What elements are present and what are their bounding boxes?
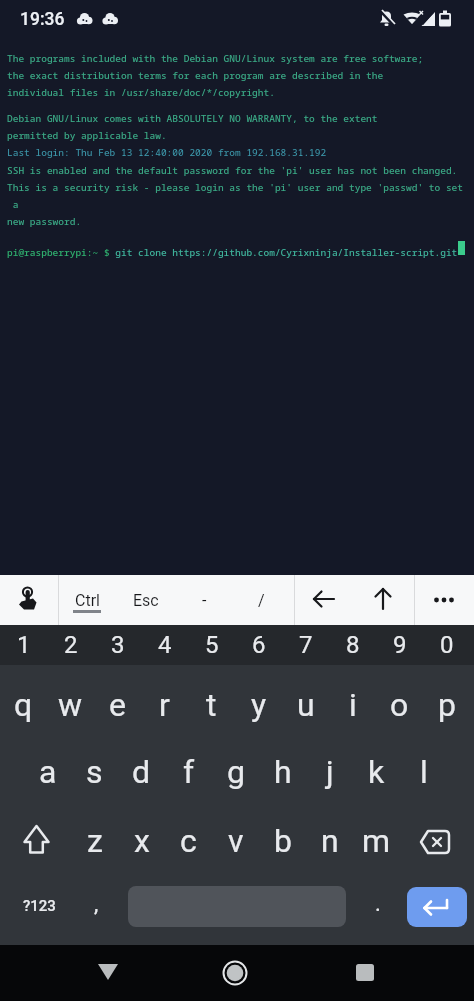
button[interactable]: [14, 582, 44, 618]
staticText: ,: [94, 891, 99, 917]
staticText: 3: [111, 631, 125, 659]
staticText: The programs included with the Debian GN…: [7, 52, 424, 65]
button[interactable]: 2: [47, 625, 94, 665]
button[interactable]: [428, 588, 460, 612]
staticText: r: [159, 686, 170, 724]
button[interactable]: o: [376, 673, 423, 737]
staticText: 0: [440, 631, 454, 659]
button[interactable]: [88, 952, 128, 992]
button[interactable]: i: [329, 673, 376, 737]
button[interactable]: p: [423, 673, 470, 737]
staticText: 9: [393, 631, 407, 659]
button[interactable]: f: [165, 740, 212, 804]
button[interactable]: Esc: [118, 575, 174, 625]
button[interactable]: a: [24, 740, 71, 804]
button[interactable]: g: [212, 740, 259, 804]
staticText: w: [58, 686, 83, 724]
staticText: e: [109, 686, 126, 724]
staticText: i: [349, 686, 357, 724]
staticText: 19:36: [20, 9, 65, 30]
button[interactable]: r: [141, 673, 188, 737]
staticText: 1: [17, 631, 31, 659]
staticText: 2: [64, 631, 78, 659]
button[interactable]: c: [165, 809, 212, 873]
staticText: s: [86, 753, 103, 791]
staticText: p: [438, 686, 456, 724]
button[interactable]: e: [94, 673, 141, 737]
staticText: individual files in /usr/share/doc/*/cop…: [7, 86, 275, 99]
staticText: /: [258, 591, 265, 610]
button[interactable]: [412, 820, 456, 860]
button[interactable]: [407, 887, 467, 927]
button[interactable]: 3: [94, 625, 141, 665]
button[interactable]: v: [212, 809, 259, 873]
staticText: Esc: [133, 591, 159, 610]
button[interactable]: m: [353, 809, 400, 873]
button[interactable]: w: [47, 673, 94, 737]
staticText: f: [183, 753, 195, 791]
staticText: This is a security risk - please login a…: [7, 181, 464, 194]
staticText: k: [368, 753, 385, 791]
staticText: 7: [299, 631, 313, 659]
button[interactable]: 7: [282, 625, 329, 665]
button[interactable]: [16, 815, 58, 859]
staticText: z: [87, 822, 103, 860]
staticText: 6: [252, 631, 266, 659]
button[interactable]: d: [118, 740, 165, 804]
button[interactable]: 1: [0, 625, 47, 665]
button[interactable]: z: [71, 809, 118, 873]
button[interactable]: y: [235, 673, 282, 737]
staticText: the exact distribution terms for each pr…: [7, 69, 384, 82]
button[interactable]: l: [400, 740, 447, 804]
staticText: h: [274, 753, 292, 791]
button[interactable]: ?123: [10, 880, 68, 932]
staticText: d: [132, 753, 151, 791]
button[interactable]: /: [233, 575, 289, 625]
staticText: new password.: [7, 215, 82, 228]
button[interactable]: j: [306, 740, 353, 804]
button[interactable]: u: [282, 673, 329, 737]
button[interactable]: ,: [78, 880, 114, 928]
staticText: b: [274, 822, 292, 860]
button[interactable]: [345, 952, 385, 992]
staticText: a: [39, 753, 57, 791]
staticText: n: [321, 822, 339, 860]
staticText: j: [326, 753, 334, 791]
staticText: y: [251, 686, 267, 724]
button[interactable]: q: [0, 673, 47, 737]
staticText: Last login: Thu Feb 13 12:40:00 2020 fro…: [7, 146, 327, 159]
button[interactable]: n: [306, 809, 353, 873]
button[interactable]: 4: [141, 625, 188, 665]
staticText: m: [362, 822, 391, 860]
button[interactable]: 8: [329, 625, 376, 665]
button[interactable]: 0: [423, 625, 470, 665]
button[interactable]: [310, 585, 338, 613]
button[interactable]: [369, 585, 397, 613]
staticText: pi@raspberrypi:~ $ git clone https://git…: [7, 246, 458, 259]
staticText: u: [297, 686, 315, 724]
button[interactable]: k: [353, 740, 400, 804]
button[interactable]: 5: [188, 625, 235, 665]
button[interactable]: s: [71, 740, 118, 804]
button[interactable]: b: [259, 809, 306, 873]
staticText: Debian GNU/Linux comes with ABSOLUTELY N…: [7, 112, 378, 125]
button[interactable]: 6: [235, 625, 282, 665]
button[interactable]: .: [360, 880, 396, 928]
button[interactable]: [215, 953, 255, 993]
button[interactable]: -: [176, 575, 232, 625]
staticText: SSH is enabled and the default password …: [7, 164, 458, 177]
button[interactable]: t: [188, 673, 235, 737]
button[interactable]: 9: [376, 625, 423, 665]
staticText: 8: [346, 631, 360, 659]
staticText: c: [180, 822, 197, 860]
staticText: l: [420, 753, 428, 791]
button[interactable]: Ctrl: [59, 575, 115, 625]
staticText: g: [227, 753, 245, 791]
button[interactable]: h: [259, 740, 306, 804]
button[interactable]: x: [118, 809, 165, 873]
staticText: q: [14, 686, 33, 724]
staticText: ?123: [23, 897, 56, 915]
staticText: t: [206, 686, 217, 724]
staticText: permitted by applicable law.: [7, 129, 167, 142]
